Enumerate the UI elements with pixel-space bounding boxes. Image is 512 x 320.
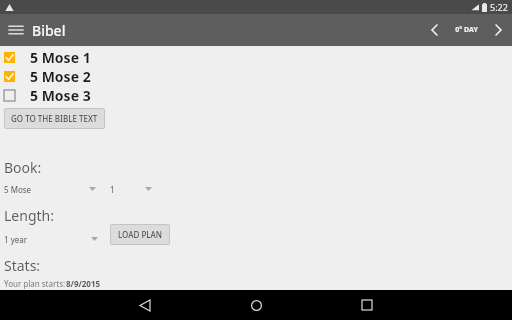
staticText: 1 year (4, 234, 28, 245)
staticText: Stats: (4, 256, 41, 275)
staticText: Length: (4, 206, 54, 225)
staticText: 5 Mose (4, 184, 32, 195)
button[interactable]: Previous day (422, 15, 446, 45)
staticText: Your plan starts: (4, 278, 66, 289)
button[interactable]: Recent apps (352, 290, 382, 320)
staticText: GO TO THE BIBLE TEXT (11, 113, 98, 124)
button[interactable]: Open navigation drawer (0, 14, 32, 46)
staticText: 0° DAY (455, 25, 478, 35)
button[interactable]: LOAD PLAN (110, 224, 170, 245)
button[interactable]: 0° DAY (446, 15, 486, 45)
button[interactable]: Back (130, 290, 160, 320)
button[interactable]: 5 Mose 3 (0, 86, 512, 105)
staticText: 5:22 (490, 1, 508, 13)
button[interactable]: Next day (486, 15, 510, 45)
staticText: 5 Mose 3 (30, 86, 91, 105)
staticText: 1 (110, 184, 115, 195)
button[interactable]: 5 Mose (0, 180, 106, 198)
button[interactable]: 1 year (0, 230, 108, 248)
button[interactable]: GO TO THE BIBLE TEXT (4, 108, 105, 129)
button[interactable]: Home (241, 290, 271, 320)
button[interactable]: 1 (106, 180, 162, 198)
button[interactable]: 5 Mose 2 (0, 67, 512, 86)
button[interactable]: 5 Mose 1 (0, 48, 512, 67)
staticText: 5 Mose 2 (30, 67, 91, 86)
staticText: LOAD PLAN (118, 229, 162, 240)
staticText: 8/9/2015 (66, 278, 101, 289)
staticText: Bibel (32, 21, 66, 40)
staticText: Book: (4, 158, 42, 177)
staticText: 5 Mose 1 (30, 48, 91, 67)
